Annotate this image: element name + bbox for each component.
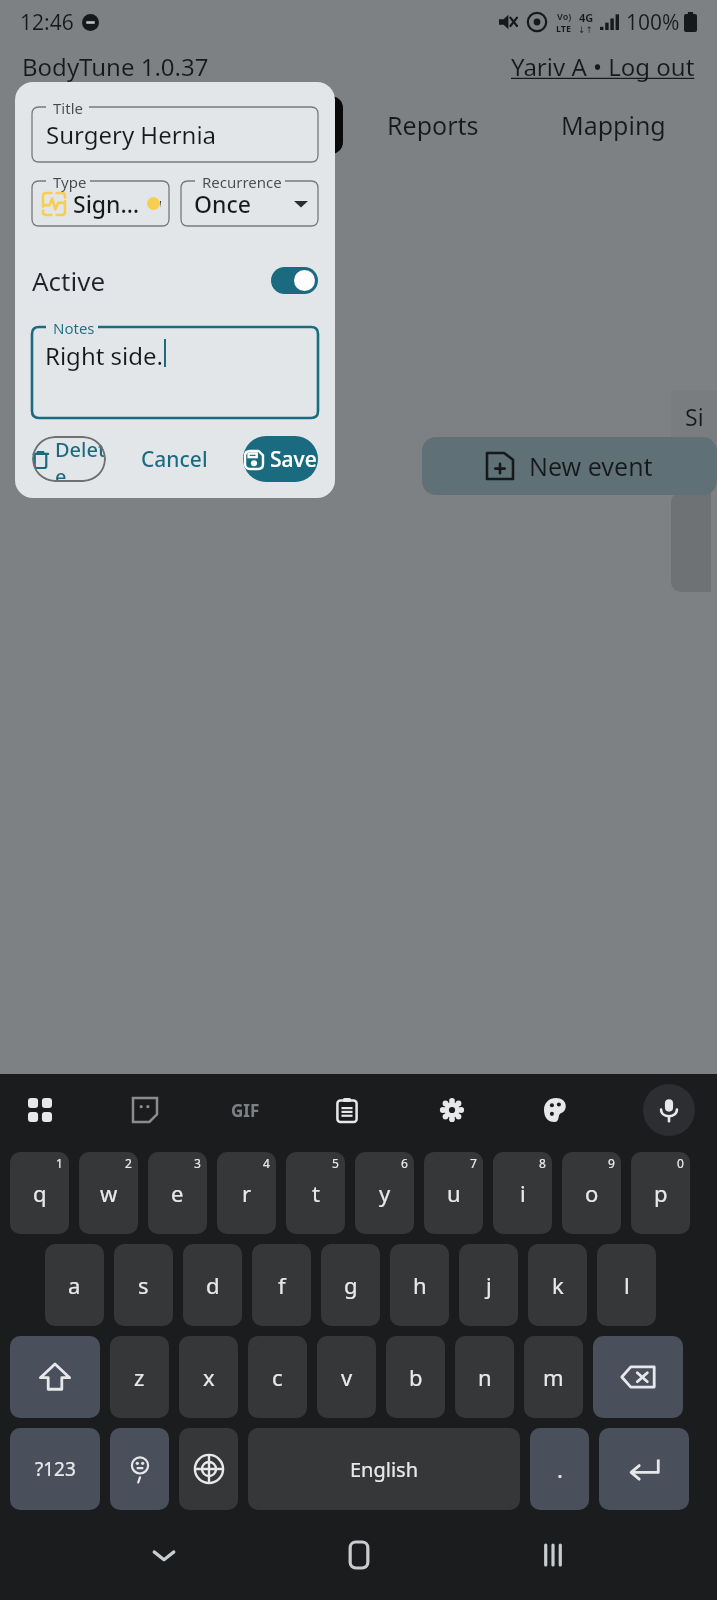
button[interactable]: Active [32, 258, 318, 302]
staticText: 7 [470, 1155, 477, 1171]
button[interactable]: Emoji [110, 1428, 169, 1510]
button[interactable]: u [424, 1152, 483, 1234]
staticText: j [486, 1270, 492, 1300]
button[interactable]: Themes [538, 1092, 574, 1128]
button[interactable]: Enter [599, 1428, 689, 1510]
staticText: y [379, 1178, 391, 1208]
staticText: Vo) [557, 10, 572, 22]
button[interactable]: b [386, 1336, 445, 1418]
staticText: c [272, 1362, 283, 1392]
button[interactable]: h [390, 1244, 449, 1326]
button[interactable]: t [286, 1152, 345, 1234]
staticText: Reports [387, 108, 479, 142]
staticText: LTE [556, 22, 572, 34]
staticText: 6 [401, 1155, 408, 1171]
staticText: l [624, 1270, 630, 1300]
button[interactable]: Journey [14, 108, 195, 142]
button[interactable]: s [114, 1244, 173, 1326]
staticText: z [134, 1362, 145, 1392]
button[interactable]: New event [422, 437, 717, 495]
staticText: n [478, 1362, 492, 1392]
staticText: f [278, 1270, 286, 1300]
button[interactable]: Settings [434, 1092, 470, 1128]
button[interactable]: x [179, 1336, 238, 1418]
button[interactable]: English [248, 1428, 520, 1510]
staticText: 0 [677, 1155, 684, 1171]
button[interactable]: z [110, 1336, 169, 1418]
button[interactable]: c [248, 1336, 307, 1418]
button[interactable]: Save [243, 436, 318, 482]
button[interactable]: n [455, 1336, 514, 1418]
button[interactable]: Change language [179, 1428, 238, 1510]
staticText: New event [529, 449, 653, 483]
staticText: 1 [56, 1155, 63, 1171]
staticText: h [413, 1270, 427, 1300]
button[interactable]: Delete [32, 436, 106, 482]
staticText: GIF [231, 1099, 260, 1122]
staticText: t [312, 1178, 320, 1208]
staticText: . [557, 1454, 563, 1484]
button[interactable]: Clipboard [329, 1092, 365, 1128]
button[interactable]: k [528, 1244, 587, 1326]
button[interactable]: Reports [343, 108, 523, 142]
button[interactable]: i [493, 1152, 552, 1234]
button[interactable]: Recent apps [523, 1525, 583, 1585]
staticText: ?123 [35, 1456, 76, 1482]
staticText: Mapping [561, 108, 666, 142]
staticText: s [138, 1270, 149, 1300]
staticText: 5 [332, 1155, 339, 1171]
button[interactable]: Keyboard modes [22, 1092, 58, 1128]
button[interactable]: m [524, 1336, 583, 1418]
button[interactable]: j [459, 1244, 518, 1326]
staticText: Title [53, 98, 83, 118]
button[interactable]: Hide keyboard [134, 1525, 194, 1585]
button[interactable]: y [355, 1152, 414, 1234]
staticText: Active [32, 263, 106, 298]
button[interactable]: Home [329, 1525, 389, 1585]
button[interactable]: Shift [10, 1336, 100, 1418]
staticText: a [68, 1270, 81, 1300]
button[interactable]: Events [195, 96, 343, 154]
button[interactable]: Once [194, 181, 308, 226]
button[interactable]: Yariv A • Log out [511, 50, 695, 83]
staticText: Sign… [73, 188, 140, 219]
button[interactable]: GIF [231, 1092, 260, 1128]
staticText: Notes [53, 318, 95, 338]
staticText: Cancel [141, 445, 208, 474]
button[interactable]: ?123 [10, 1428, 100, 1510]
staticText: 12:46 [20, 8, 74, 37]
staticText: Journey [75, 108, 165, 142]
staticText: 100% [626, 8, 680, 37]
staticText: e [171, 1178, 184, 1208]
staticText: b [409, 1362, 423, 1392]
button[interactable]: r [217, 1152, 276, 1234]
staticText: 8 [539, 1155, 546, 1171]
button[interactable]: w [79, 1152, 138, 1234]
button[interactable]: Mapping [523, 108, 703, 142]
button[interactable]: q [10, 1152, 69, 1234]
staticText: BodyTune 1.0.37 [22, 50, 209, 83]
staticText: q [33, 1178, 47, 1208]
staticText: u [447, 1178, 461, 1208]
button[interactable]: Stickers [127, 1092, 163, 1128]
staticText: 4G [579, 10, 594, 25]
button[interactable]: . [530, 1428, 589, 1510]
button[interactable]: f [252, 1244, 311, 1326]
button[interactable]: g [321, 1244, 380, 1326]
button[interactable]: Backspace [593, 1336, 683, 1418]
staticText: k [552, 1270, 564, 1300]
button[interactable]: Voice input [643, 1084, 695, 1136]
button[interactable]: e [148, 1152, 207, 1234]
button[interactable]: p [631, 1152, 690, 1234]
button[interactable]: o [562, 1152, 621, 1234]
staticText: Type [53, 172, 87, 192]
button[interactable]: v [317, 1336, 376, 1418]
button[interactable]: d [183, 1244, 242, 1326]
button[interactable]: Cancel [129, 437, 220, 482]
button[interactable]: a [45, 1244, 104, 1326]
staticText: Yariv A • Log out [511, 50, 695, 83]
button[interactable]: l [597, 1244, 656, 1326]
staticText: 3 [194, 1155, 201, 1171]
button[interactable]: Sign… [43, 181, 161, 226]
